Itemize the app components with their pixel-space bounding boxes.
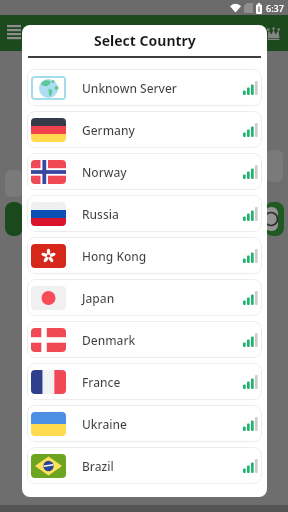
staticText: Select Country [94,31,196,50]
button[interactable]: France [27,363,262,400]
button[interactable]: Brazil [27,447,262,484]
staticText: Germany [82,122,243,138]
staticText: Brazil [82,458,243,474]
button[interactable]: Unknown Server [27,69,262,106]
staticText: Unknown Server [82,80,243,96]
button[interactable]: Ukraine [27,405,262,442]
staticText: 6:37 [266,2,284,14]
staticText: Japan [82,290,243,306]
button[interactable]: Japan [27,279,262,316]
staticText: Hong Kong [82,248,243,264]
button[interactable]: Denmark [27,321,262,358]
staticText: France [82,374,243,390]
button[interactable]: Norway [27,153,262,190]
staticText: Denmark [82,332,243,348]
button[interactable]: Hong Kong [27,237,262,274]
staticText: Ukraine [82,416,243,432]
staticText: Norway [82,164,243,180]
button[interactable]: Russia [27,195,262,232]
button[interactable]: Germany [27,111,262,148]
staticText: Russia [82,206,243,222]
